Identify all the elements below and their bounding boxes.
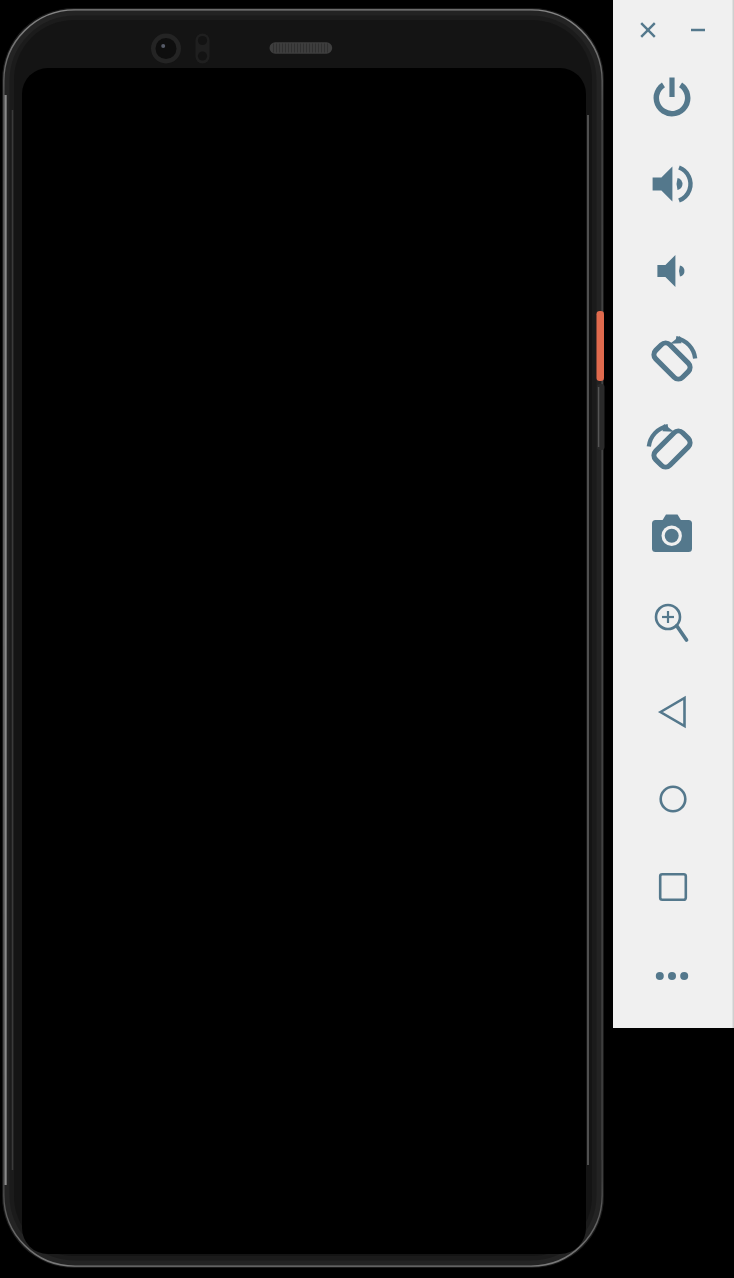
button[interactable] [646,423,698,475]
button[interactable] [646,508,698,560]
button[interactable] [647,861,699,913]
button[interactable] [633,15,663,45]
button[interactable] [646,596,698,648]
button[interactable] [646,245,698,297]
button[interactable] [646,70,698,122]
button[interactable] [646,686,698,738]
button[interactable] [646,950,698,1002]
button[interactable] [647,773,699,825]
button[interactable] [683,15,713,45]
button[interactable] [646,335,698,387]
button[interactable] [646,158,698,210]
